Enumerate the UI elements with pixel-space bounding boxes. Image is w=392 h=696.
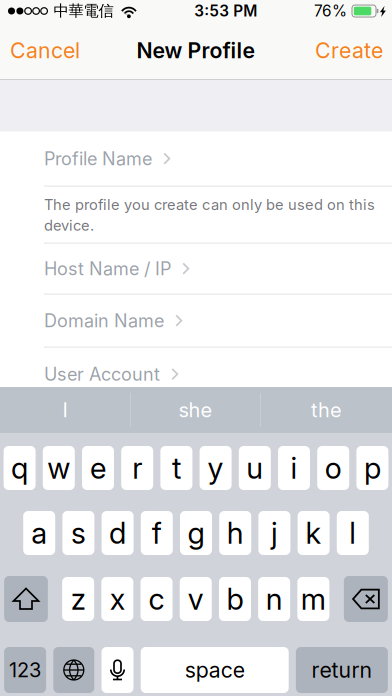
button[interactable]: space bbox=[141, 647, 289, 693]
staticText: 中華電信 bbox=[53, 1, 113, 21]
button[interactable]: c bbox=[141, 577, 173, 621]
button[interactable]: Domain Name bbox=[0, 295, 392, 347]
button[interactable]: Shift bbox=[4, 576, 48, 622]
button[interactable]: r bbox=[121, 446, 153, 490]
button[interactable]: u bbox=[239, 446, 271, 490]
button[interactable]: User Account bbox=[0, 348, 392, 401]
button[interactable]: w bbox=[43, 446, 75, 490]
staticText: Host Name / IP bbox=[44, 258, 171, 280]
staticText: the bbox=[311, 398, 342, 422]
button[interactable]: I bbox=[0, 387, 130, 433]
staticText: The profile you create can only be used … bbox=[44, 196, 375, 213]
button[interactable]: j bbox=[258, 511, 290, 555]
staticText: User Account bbox=[44, 363, 160, 385]
button[interactable]: b bbox=[219, 577, 251, 621]
button[interactable]: f bbox=[141, 511, 173, 555]
staticText: Cancel bbox=[10, 38, 80, 63]
button[interactable]: l bbox=[337, 511, 369, 555]
button[interactable]: 123 bbox=[4, 647, 46, 693]
button[interactable]: k bbox=[298, 511, 330, 555]
staticText: return bbox=[311, 657, 372, 683]
staticText: j bbox=[271, 515, 278, 551]
button[interactable]: d bbox=[102, 511, 134, 555]
button[interactable]: Create bbox=[306, 28, 392, 72]
button[interactable]: i bbox=[278, 446, 310, 490]
staticText: y bbox=[208, 450, 224, 486]
staticText: v bbox=[188, 581, 204, 617]
staticText: n bbox=[266, 581, 283, 617]
staticText: space bbox=[185, 657, 245, 683]
staticText: d bbox=[109, 515, 126, 551]
button[interactable]: Host Name / IP bbox=[0, 244, 392, 294]
button[interactable]: z bbox=[62, 577, 94, 621]
staticText: x bbox=[110, 581, 125, 617]
staticText: 76% bbox=[314, 2, 347, 20]
button[interactable]: the bbox=[261, 387, 392, 433]
staticText: s bbox=[71, 515, 86, 551]
button[interactable]: Delete bbox=[344, 576, 388, 622]
button[interactable]: she bbox=[131, 387, 260, 433]
button[interactable]: s bbox=[62, 511, 94, 555]
staticText: l bbox=[349, 515, 356, 551]
button[interactable]: x bbox=[101, 577, 133, 621]
staticText: c bbox=[149, 581, 165, 617]
staticText: k bbox=[306, 515, 322, 551]
staticText: o bbox=[325, 450, 342, 486]
staticText: device. bbox=[44, 216, 94, 234]
staticText: i bbox=[290, 450, 297, 486]
button[interactable]: h bbox=[219, 511, 251, 555]
staticText: she bbox=[178, 398, 212, 422]
staticText: 123 bbox=[9, 658, 41, 682]
staticText: f bbox=[152, 515, 162, 551]
staticText: Profile Name bbox=[44, 148, 152, 170]
staticText: 3:53 PM bbox=[194, 2, 257, 20]
staticText: a bbox=[31, 515, 47, 551]
staticText: g bbox=[187, 515, 204, 551]
button[interactable]: v bbox=[180, 577, 212, 621]
button[interactable]: t bbox=[160, 446, 192, 490]
button[interactable]: Next keyboard bbox=[53, 647, 94, 693]
button[interactable]: e bbox=[82, 446, 114, 490]
staticText: e bbox=[90, 450, 106, 486]
button[interactable]: a bbox=[23, 511, 55, 555]
staticText: q bbox=[11, 450, 28, 486]
staticText: w bbox=[47, 450, 70, 486]
staticText: h bbox=[227, 515, 244, 551]
button[interactable]: Cancel bbox=[0, 28, 90, 72]
button[interactable]: g bbox=[180, 511, 212, 555]
staticText: r bbox=[132, 450, 142, 486]
button[interactable]: return bbox=[296, 647, 388, 693]
staticText: m bbox=[301, 581, 326, 617]
staticText: I bbox=[62, 398, 67, 422]
staticText: u bbox=[246, 450, 263, 486]
button[interactable]: q bbox=[4, 446, 36, 490]
staticText: z bbox=[71, 581, 86, 617]
staticText: Create bbox=[315, 38, 383, 63]
button[interactable]: Profile Name bbox=[0, 132, 392, 186]
button[interactable]: m bbox=[297, 577, 329, 621]
staticText: p bbox=[364, 450, 381, 486]
staticText: Domain Name bbox=[44, 310, 164, 332]
button[interactable]: n bbox=[258, 577, 290, 621]
button[interactable]: o bbox=[317, 446, 349, 490]
staticText: b bbox=[226, 581, 243, 617]
button[interactable]: Dictate bbox=[101, 647, 133, 693]
button[interactable]: p bbox=[356, 446, 388, 490]
button[interactable]: y bbox=[200, 446, 232, 490]
staticText: t bbox=[172, 450, 181, 486]
staticText: New Profile bbox=[136, 38, 255, 63]
